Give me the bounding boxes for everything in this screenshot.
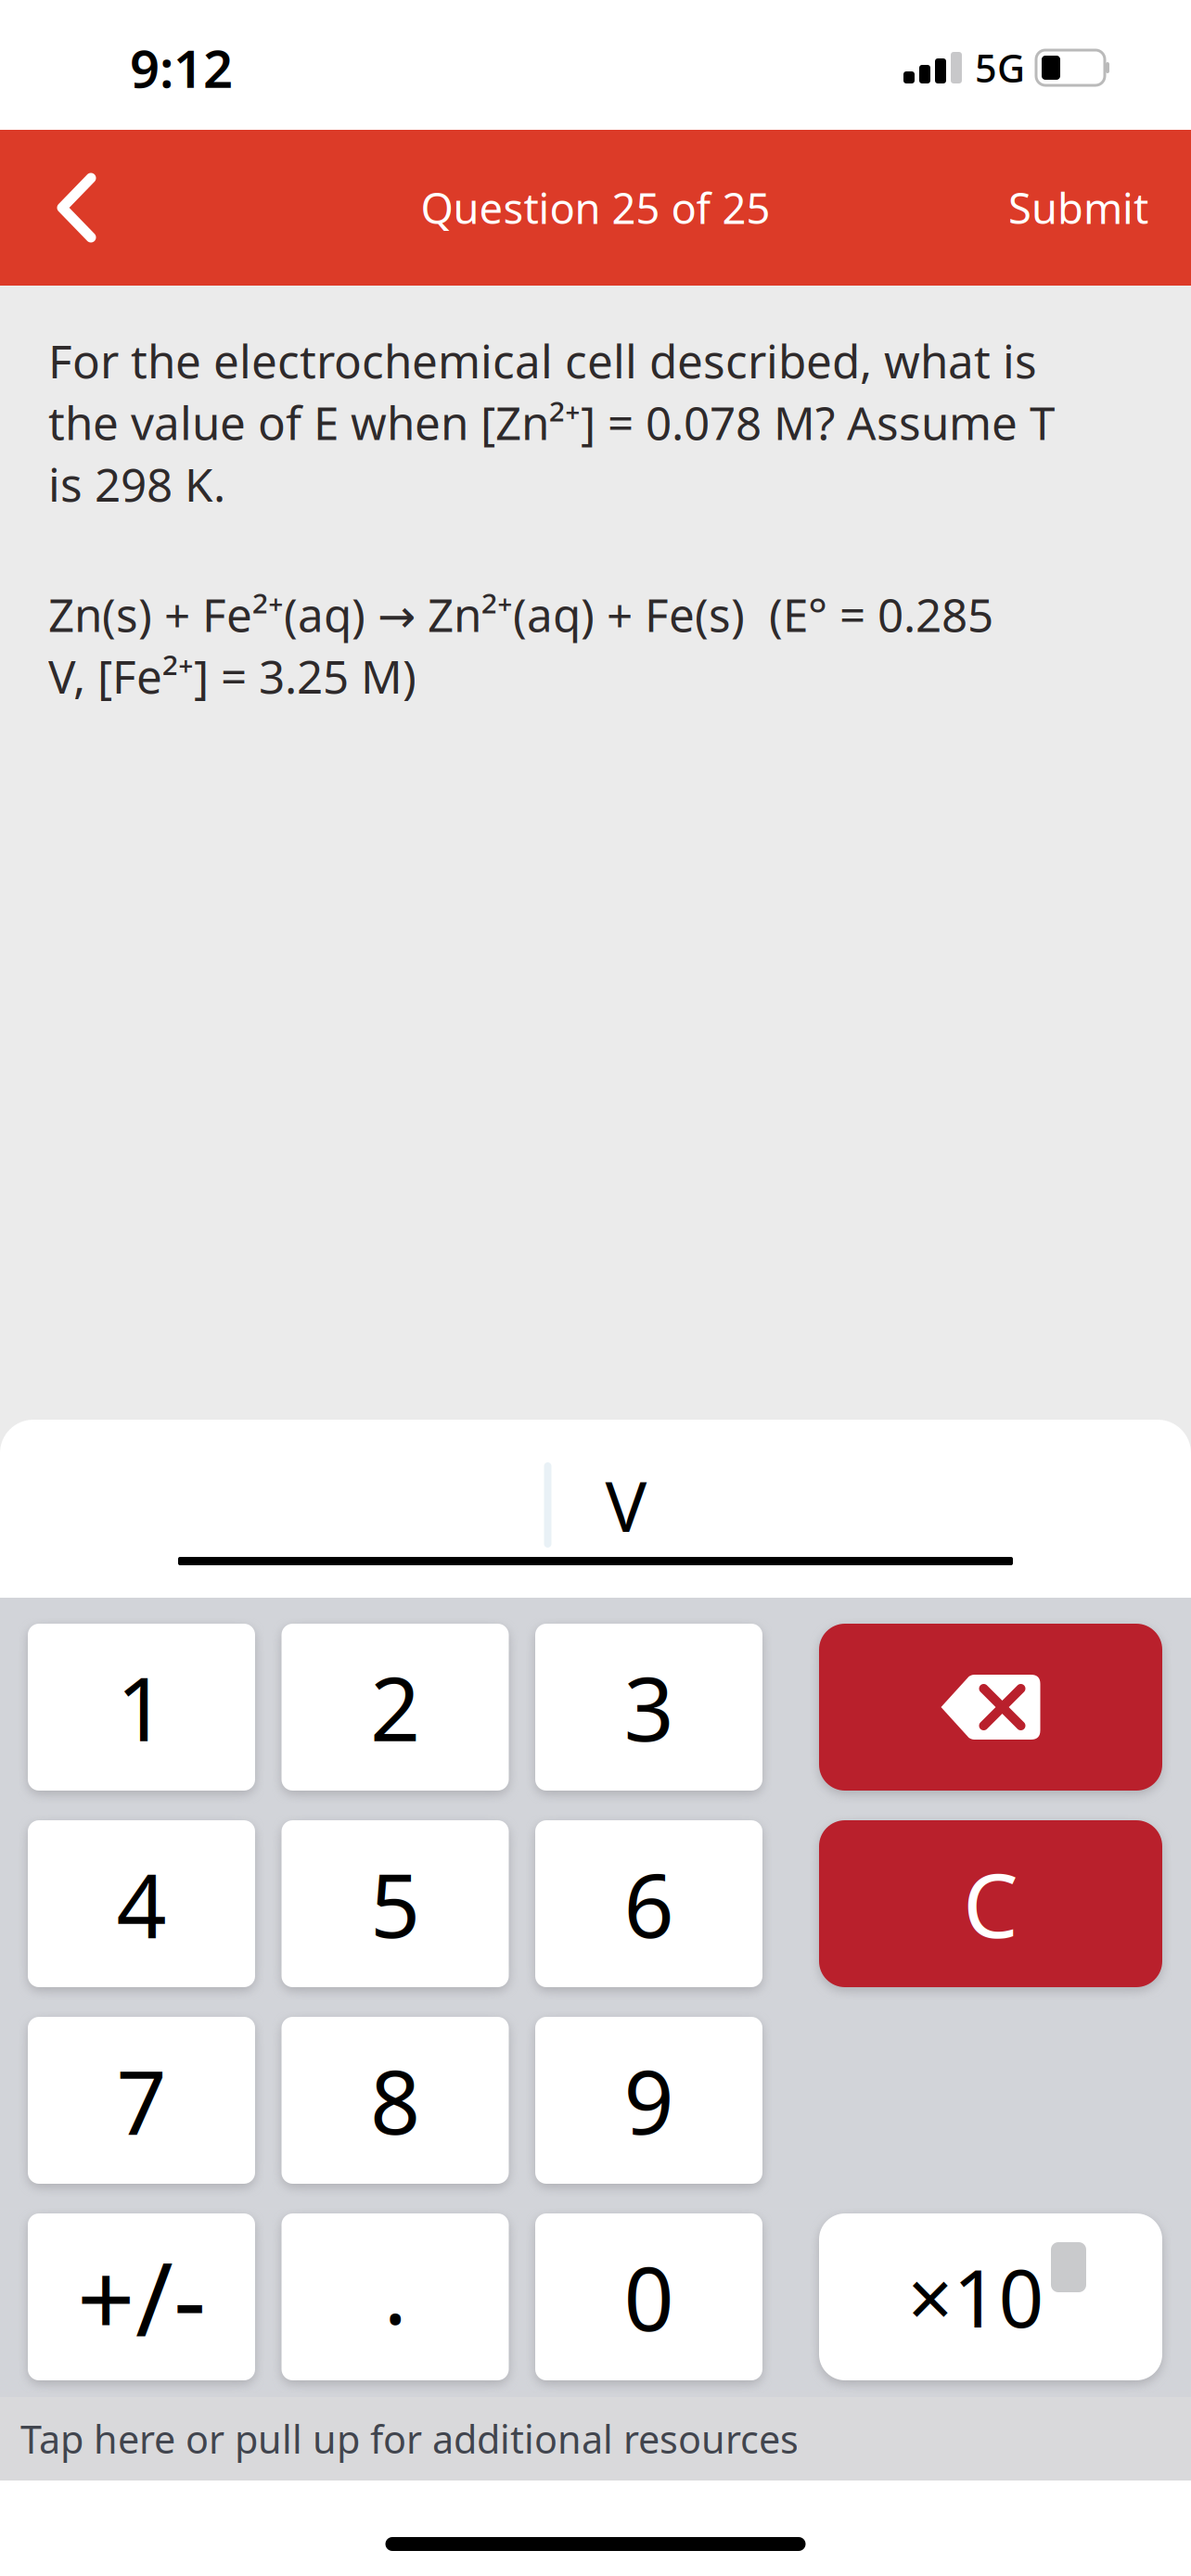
button[interactable]: 0	[535, 2213, 762, 2380]
button[interactable]: 3	[535, 1624, 762, 1791]
button[interactable]: Delete	[819, 1624, 1162, 1791]
button[interactable]: Clear	[819, 1820, 1162, 1987]
button[interactable]: 8	[282, 2017, 509, 2184]
staticText: For the electrochemical cell described, …	[48, 330, 1055, 514]
staticText: ×10	[908, 2244, 1044, 2349]
staticText: Question 25 of 25	[421, 180, 770, 236]
staticText: +/-	[77, 2230, 206, 2364]
button[interactable]: Back	[0, 136, 124, 279]
staticText: 9	[624, 2042, 674, 2159]
button[interactable]: Submit	[1008, 135, 1191, 280]
button[interactable]: 2	[282, 1624, 509, 1791]
button[interactable]: 1	[28, 1624, 255, 1791]
staticText: 8	[370, 2042, 420, 2159]
button[interactable]: Times ten to the power	[819, 2213, 1162, 2380]
staticText: 9:12	[130, 33, 233, 102]
button[interactable]: .	[282, 2213, 509, 2380]
staticText: 3	[624, 1649, 674, 1765]
button[interactable]: Tap here or pull up for additional resou…	[0, 2397, 1191, 2480]
staticText: C	[963, 1845, 1018, 1962]
button[interactable]: +/-	[28, 2213, 255, 2380]
button[interactable]: 6	[535, 1820, 762, 1987]
button[interactable]: Answer in volts	[178, 1420, 1013, 1565]
button[interactable]: 9	[535, 2017, 762, 2184]
staticText: 5G	[975, 42, 1025, 93]
staticText: .	[384, 2232, 407, 2349]
button[interactable]: 4	[28, 1820, 255, 1987]
staticText: Zn(s) + Fe²⁺(aq) → Zn²⁺(aq) + Fe(s) (E° …	[48, 584, 993, 706]
staticText: Tap here or pull up for additional resou…	[20, 2413, 799, 2464]
staticText: 0	[624, 2239, 674, 2355]
staticText: Submit	[1008, 180, 1148, 236]
staticText: V	[605, 1459, 647, 1551]
button[interactable]: 7	[28, 2017, 255, 2184]
staticText: 5	[370, 1845, 420, 1962]
button[interactable]: 5	[282, 1820, 509, 1987]
staticText: 6	[624, 1845, 674, 1962]
staticText: 7	[116, 2042, 166, 2159]
staticText: 4	[116, 1845, 166, 1962]
staticText: 2	[370, 1649, 420, 1765]
staticText: 1	[116, 1649, 166, 1765]
